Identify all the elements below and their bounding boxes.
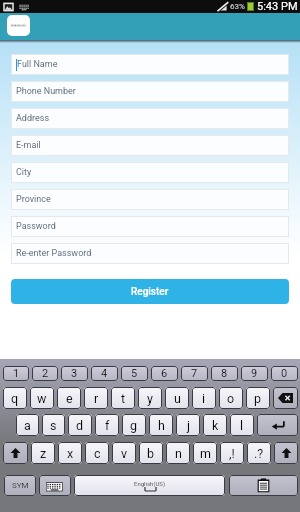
staticText: u bbox=[174, 391, 181, 406]
button[interactable]: j bbox=[176, 414, 200, 436]
button[interactable]: ,! bbox=[220, 442, 244, 464]
button[interactable]: Re-enter Password bbox=[11, 243, 289, 264]
button[interactable]: English(US) bbox=[74, 475, 225, 496]
button[interactable]: Shift bbox=[274, 442, 298, 464]
button[interactable]: Enter bbox=[257, 414, 298, 436]
staticText: SYM bbox=[12, 481, 29, 490]
button[interactable]: w bbox=[30, 387, 54, 409]
button[interactable]: y bbox=[138, 387, 162, 409]
button[interactable]: Register bbox=[11, 279, 289, 304]
staticText: n bbox=[175, 446, 182, 461]
button[interactable]: s bbox=[42, 414, 65, 436]
staticText: h bbox=[158, 418, 165, 433]
button[interactable]: Change keyboard bbox=[39, 475, 71, 496]
button[interactable]: 7 bbox=[181, 366, 208, 381]
staticText: c bbox=[94, 446, 101, 461]
staticText: 5:43 PM bbox=[257, 0, 298, 13]
staticText: 2 bbox=[42, 367, 49, 380]
button[interactable]: z bbox=[31, 442, 55, 464]
button[interactable]: 8 bbox=[211, 366, 238, 381]
button[interactable]: c bbox=[85, 442, 109, 464]
button[interactable]: b bbox=[139, 442, 163, 464]
button[interactable]: e bbox=[57, 387, 81, 409]
staticText: English(US) bbox=[134, 480, 166, 487]
button[interactable]: g bbox=[122, 414, 146, 436]
staticText: a bbox=[24, 418, 31, 433]
staticText: d bbox=[76, 418, 84, 433]
staticText: Register bbox=[131, 286, 169, 298]
button[interactable]: p bbox=[246, 387, 270, 409]
button[interactable]: 9 bbox=[241, 366, 268, 381]
button[interactable]: n bbox=[166, 442, 190, 464]
button[interactable]: Address bbox=[11, 108, 289, 129]
button[interactable]: x bbox=[58, 442, 82, 464]
button[interactable]: Full Name bbox=[11, 54, 289, 75]
staticText: 6 bbox=[161, 367, 168, 380]
staticText: v bbox=[121, 446, 128, 461]
staticText: y bbox=[147, 391, 153, 406]
staticText: o bbox=[227, 391, 235, 406]
staticText: 5 bbox=[131, 367, 138, 380]
button[interactable]: k bbox=[203, 414, 227, 436]
button[interactable]: App logo bbox=[7, 15, 30, 36]
button[interactable]: d bbox=[68, 414, 92, 436]
button[interactable]: f bbox=[95, 414, 119, 436]
button[interactable]: 3 bbox=[61, 366, 88, 381]
button[interactable]: E-mail bbox=[11, 135, 289, 156]
button[interactable]: SYM bbox=[4, 475, 36, 496]
staticText: i bbox=[202, 391, 206, 406]
staticText: j bbox=[187, 418, 190, 433]
button[interactable]: v bbox=[112, 442, 136, 464]
staticText: e bbox=[66, 391, 73, 406]
button[interactable]: 2 bbox=[32, 366, 58, 381]
staticText: t bbox=[121, 391, 126, 406]
staticText: p bbox=[254, 391, 262, 406]
button[interactable]: a bbox=[16, 414, 39, 436]
staticText: Address bbox=[16, 113, 50, 124]
staticText: 9 bbox=[251, 367, 258, 380]
staticText: 63% bbox=[230, 2, 245, 11]
button[interactable]: 1 bbox=[3, 366, 29, 381]
staticText: Re-enter Password bbox=[16, 248, 92, 259]
button[interactable]: Clipboard bbox=[229, 475, 298, 496]
button[interactable]: Province bbox=[11, 189, 289, 210]
button[interactable]: l bbox=[230, 414, 254, 436]
button[interactable]: t bbox=[111, 387, 135, 409]
staticText: Password bbox=[16, 221, 56, 232]
staticText: 0 bbox=[281, 367, 288, 380]
staticText: City bbox=[16, 167, 32, 178]
staticText: E-mail bbox=[16, 140, 41, 151]
staticText: Phone Number bbox=[16, 86, 76, 97]
button[interactable]: r bbox=[84, 387, 108, 409]
button[interactable]: City bbox=[11, 162, 289, 183]
staticText: 1 bbox=[13, 367, 20, 380]
staticText: m bbox=[200, 446, 211, 461]
button[interactable]: h bbox=[149, 414, 173, 436]
staticText: q bbox=[11, 391, 19, 406]
button[interactable]: 6 bbox=[151, 366, 178, 381]
button[interactable]: 5 bbox=[121, 366, 148, 381]
staticText: .? bbox=[254, 446, 264, 461]
button[interactable]: q bbox=[3, 387, 27, 409]
staticText: x bbox=[67, 446, 74, 461]
button[interactable]: Shift bbox=[3, 442, 28, 464]
button[interactable]: .? bbox=[247, 442, 271, 464]
staticText: l bbox=[240, 418, 244, 433]
button[interactable]: Phone Number bbox=[11, 81, 289, 102]
button[interactable]: 0 bbox=[271, 366, 298, 381]
staticText: r bbox=[94, 391, 99, 406]
staticText: 4 bbox=[101, 367, 108, 380]
button[interactable]: u bbox=[165, 387, 189, 409]
staticText: 7 bbox=[191, 367, 198, 380]
button[interactable]: Password bbox=[11, 216, 289, 237]
button[interactable]: Backspace bbox=[273, 387, 298, 409]
button[interactable]: m bbox=[193, 442, 217, 464]
staticText: w bbox=[37, 391, 47, 406]
staticText: Province bbox=[16, 194, 51, 205]
button[interactable]: o bbox=[219, 387, 243, 409]
button[interactable]: 4 bbox=[91, 366, 118, 381]
staticText: f bbox=[105, 418, 110, 433]
staticText: 8 bbox=[221, 367, 228, 380]
staticText: z bbox=[40, 446, 47, 461]
button[interactable]: i bbox=[192, 387, 216, 409]
